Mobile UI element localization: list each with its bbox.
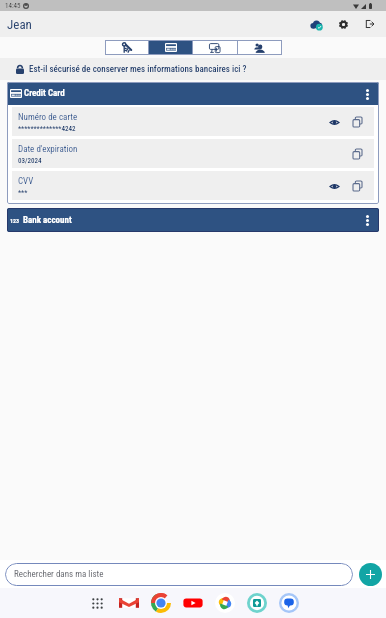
button[interactable]: Show value	[325, 113, 343, 131]
button[interactable]: Show value	[325, 177, 343, 195]
button[interactable]: All apps	[81, 588, 113, 618]
staticText: 03/2024	[18, 157, 42, 165]
button[interactable]: Credit Card	[7, 82, 379, 105]
button[interactable]: Rechercher dans ma liste	[5, 563, 353, 586]
staticText: 123	[10, 217, 21, 224]
button[interactable]: Payments	[149, 40, 192, 55]
button[interactable]: Copy value	[348, 145, 366, 163]
button[interactable]: Passwords	[105, 40, 148, 55]
staticText: Date d'expiration	[18, 144, 78, 155]
button[interactable]: Add item	[359, 563, 382, 586]
button[interactable]: Copy value	[348, 177, 366, 195]
button[interactable]: More options	[358, 211, 376, 229]
button[interactable]: Identities	[238, 40, 282, 55]
button[interactable]: 123	[7, 208, 379, 232]
staticText: Est-il sécurisé de conserver mes informa…	[29, 64, 247, 75]
staticText: Rechercher dans ma liste	[14, 569, 104, 580]
button[interactable]: CVV	[12, 171, 374, 200]
staticText: ***	[18, 189, 28, 197]
staticText: Jean	[7, 17, 32, 32]
button[interactable]: YouTube	[177, 588, 209, 618]
button[interactable]: Sync status	[305, 13, 327, 35]
staticText: Credit Card	[24, 88, 65, 99]
button[interactable]: Est-il sécurisé de conserver mes informa…	[0, 58, 386, 80]
button[interactable]: Numéro de carte	[12, 107, 374, 136]
button[interactable]: More options	[358, 85, 376, 103]
staticText: Numéro de carte	[18, 112, 78, 123]
staticText: Bank account	[23, 215, 72, 226]
button[interactable]: Password manager	[241, 588, 273, 618]
button[interactable]: Gmail	[113, 588, 145, 618]
button[interactable]: Chrome	[145, 588, 177, 618]
button[interactable]: Copy value	[348, 113, 366, 131]
button[interactable]: Date d'expiration	[12, 139, 374, 168]
staticText: 14:45	[5, 2, 21, 10]
button[interactable]: Devices	[193, 40, 237, 55]
button[interactable]: Log out	[359, 13, 381, 35]
staticText: CVV	[18, 176, 34, 187]
button[interactable]: Messages	[273, 588, 305, 618]
button[interactable]: Photos	[209, 588, 241, 618]
staticText: **************4242	[18, 125, 76, 133]
button[interactable]: Settings	[332, 13, 354, 35]
